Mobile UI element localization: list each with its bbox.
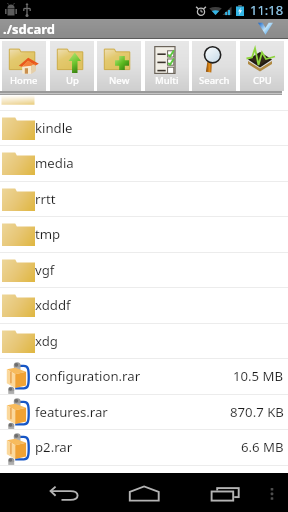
staticText: Search [199, 74, 230, 87]
staticText: ./sdcard [3, 20, 56, 38]
staticText: tmp [35, 225, 288, 243]
staticText: features.rar [35, 403, 230, 421]
button[interactable]: More options [260, 479, 284, 507]
button[interactable]: Back [42, 479, 88, 507]
button[interactable]: media [0, 145, 288, 181]
staticText: kindle [35, 119, 288, 137]
button[interactable] [0, 95, 288, 110]
button[interactable]: Home [121, 479, 167, 507]
staticText: 11:18 [250, 1, 284, 19]
button[interactable]: xdg [0, 323, 288, 359]
staticText: CPU [253, 74, 272, 87]
staticText: xdg [35, 332, 288, 350]
staticText: Multi [155, 74, 179, 87]
staticText: configuration.rar [35, 367, 233, 385]
button[interactable]: CPU [240, 41, 284, 91]
staticText: 870.7 KB [230, 403, 284, 421]
button[interactable]: Expand path [258, 22, 273, 35]
button[interactable]: p2.rar [0, 429, 288, 465]
staticText: rrtt [35, 190, 288, 208]
staticText: Home [10, 74, 38, 87]
staticText: p2.rar [35, 438, 241, 456]
button[interactable]: rrtt [0, 181, 288, 217]
button[interactable]: Multi [145, 41, 189, 91]
button[interactable]: configuration.rar [0, 358, 288, 394]
button[interactable]: Recent apps [201, 479, 247, 507]
staticText: Up [66, 74, 79, 87]
staticText: 10.5 MB [233, 367, 284, 385]
button[interactable]: New [97, 41, 141, 91]
staticText: media [35, 154, 288, 172]
staticText: 6.6 MB [241, 438, 284, 456]
staticText: xdddf [35, 296, 288, 314]
button[interactable]: features.rar [0, 394, 288, 430]
button[interactable]: Up [50, 41, 94, 91]
button[interactable]: kindle [0, 110, 288, 146]
staticText: vgf [35, 261, 288, 279]
button[interactable]: Search [192, 41, 236, 91]
button[interactable]: Home [2, 41, 46, 91]
button[interactable]: tmp [0, 216, 288, 252]
button[interactable]: xdddf [0, 287, 288, 323]
staticText: New [109, 74, 130, 87]
button[interactable]: vgf [0, 252, 288, 288]
